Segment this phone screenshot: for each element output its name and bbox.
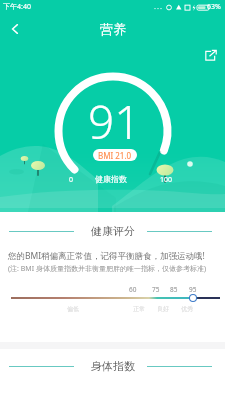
button[interactable]: Share [200,45,220,65]
staticText: 0 [69,175,74,185]
staticText: BMI 21.0 [98,150,132,161]
staticText: 下午4:40 [3,2,31,12]
staticText: 95 [189,285,197,294]
staticText: 91 [88,90,141,153]
staticText: 75 [152,285,160,294]
staticText: 健康指数 [95,174,127,184]
staticText: 63% [207,2,221,12]
staticText: 健康评分 [91,224,135,238]
staticText: 100 [160,175,173,185]
staticText: 优秀 [181,305,193,313]
staticText: 营养 [100,21,126,37]
staticText: (注: BMI 身体质量指数并非衡量肥胖的唯一指标，仅做参考标准) [8,264,206,274]
staticText: 偏低 [67,305,79,313]
staticText: 85 [170,285,178,294]
staticText: 60 [129,285,137,294]
button[interactable]: Back [0,14,30,44]
staticText: 身体指数 [91,359,135,373]
staticText: 您的BMI稍偏离正常值，记得平衡膳食，加强运动哦! [8,250,205,262]
staticText: 正常 [133,305,145,313]
staticText: 良好 [157,305,169,313]
